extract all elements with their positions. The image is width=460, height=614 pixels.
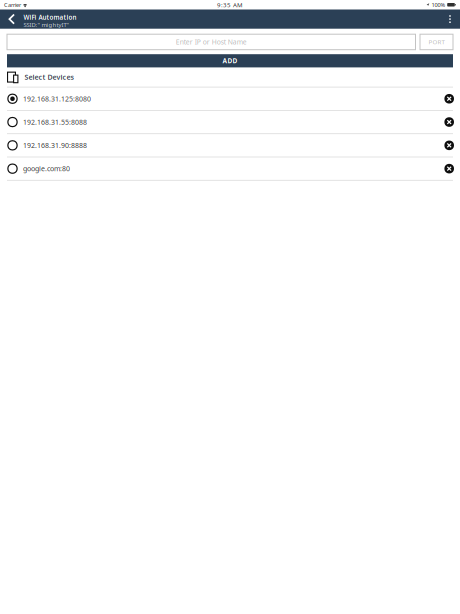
staticText: WiFi Automation	[23, 13, 76, 21]
staticText: 192.168.31.55:8088	[23, 117, 87, 127]
button[interactable]: Remove 192.168.31.90:8888	[442, 134, 453, 157]
staticText: Enter IP or Host Name	[176, 37, 247, 47]
staticText: PORT	[428, 38, 444, 46]
staticText: google.com:80	[23, 164, 70, 173]
staticText: Select Devices	[24, 72, 73, 82]
staticText: 192.168.31.90:8888	[23, 141, 87, 150]
staticText: SSID:" mightyIT"	[23, 21, 68, 29]
button[interactable]: Selected 192.168.31.125:8080	[7, 87, 18, 110]
staticText: 192.168.31.125:8080	[23, 94, 91, 103]
button[interactable]: Select google.com:80	[7, 157, 18, 180]
button[interactable]: ADD	[7, 54, 453, 67]
staticText: ADD	[222, 56, 237, 65]
button[interactable]: Select 192.168.31.55:8088	[7, 111, 18, 133]
staticText: 100%	[431, 1, 445, 8]
staticText: Carrier	[4, 1, 21, 8]
button[interactable]: Remove google.com:80	[442, 157, 453, 180]
button[interactable]: Remove 192.168.31.55:8088	[442, 111, 453, 133]
button[interactable]: Select 192.168.31.90:8888	[7, 134, 18, 157]
button[interactable]: Back	[0, 9, 23, 29]
staticText: 9:35 AM	[217, 1, 243, 9]
button[interactable]: More options	[443, 9, 457, 29]
button[interactable]: Remove 192.168.31.125:8080	[442, 87, 453, 110]
